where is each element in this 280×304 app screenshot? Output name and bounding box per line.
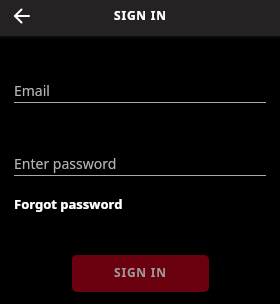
staticText: Email	[14, 81, 50, 100]
button[interactable]: Email	[14, 81, 266, 103]
button[interactable]	[12, 6, 32, 26]
staticText: Enter password	[14, 154, 117, 173]
button[interactable]: Forgot password	[14, 195, 123, 213]
button[interactable]: SIGN IN	[72, 255, 209, 292]
button[interactable]: Enter password	[14, 154, 266, 176]
staticText: SIGN IN	[114, 264, 167, 280]
staticText: SIGN IN	[114, 7, 167, 23]
